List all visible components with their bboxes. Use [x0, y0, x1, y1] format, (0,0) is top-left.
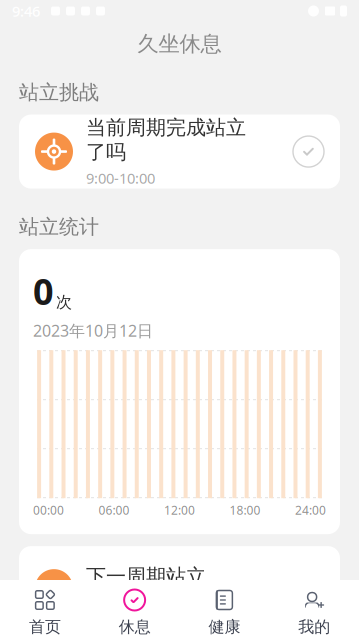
- staticText: 18:00: [229, 502, 260, 518]
- staticText: 24:00: [295, 502, 326, 518]
- staticText: 0: [33, 267, 54, 315]
- button[interactable]: 我的: [269, 580, 359, 638]
- staticText: 当前周期完成站立了吗: [86, 115, 246, 164]
- button[interactable]: 下一周期站立: [19, 546, 340, 620]
- staticText: 06:00: [98, 502, 129, 518]
- button[interactable]: 健康: [179, 580, 269, 638]
- staticText: 00:00: [33, 502, 64, 518]
- staticText: 9:46: [12, 1, 40, 21]
- staticText: 9:00-10:00: [86, 168, 155, 188]
- staticText: 12:00: [164, 502, 195, 518]
- staticText: 站立挑战: [19, 80, 99, 105]
- staticText: 首页: [29, 617, 61, 637]
- staticText: 10:00-11:00: [86, 593, 163, 612]
- button[interactable]: 首页: [0, 580, 90, 638]
- staticText: 我的: [298, 617, 330, 637]
- staticText: 次: [56, 292, 72, 312]
- button[interactable]: 当前周期完成站立了吗: [19, 115, 340, 189]
- staticText: 2023年10月12日: [33, 320, 153, 341]
- button[interactable]: 休息: [90, 580, 180, 638]
- staticText: 下一周期站立: [86, 564, 206, 589]
- staticText: 健康: [208, 617, 240, 637]
- staticText: 久坐休息: [137, 31, 221, 57]
- staticText: 休息: [119, 617, 151, 637]
- staticText: 站立统计: [19, 215, 99, 239]
